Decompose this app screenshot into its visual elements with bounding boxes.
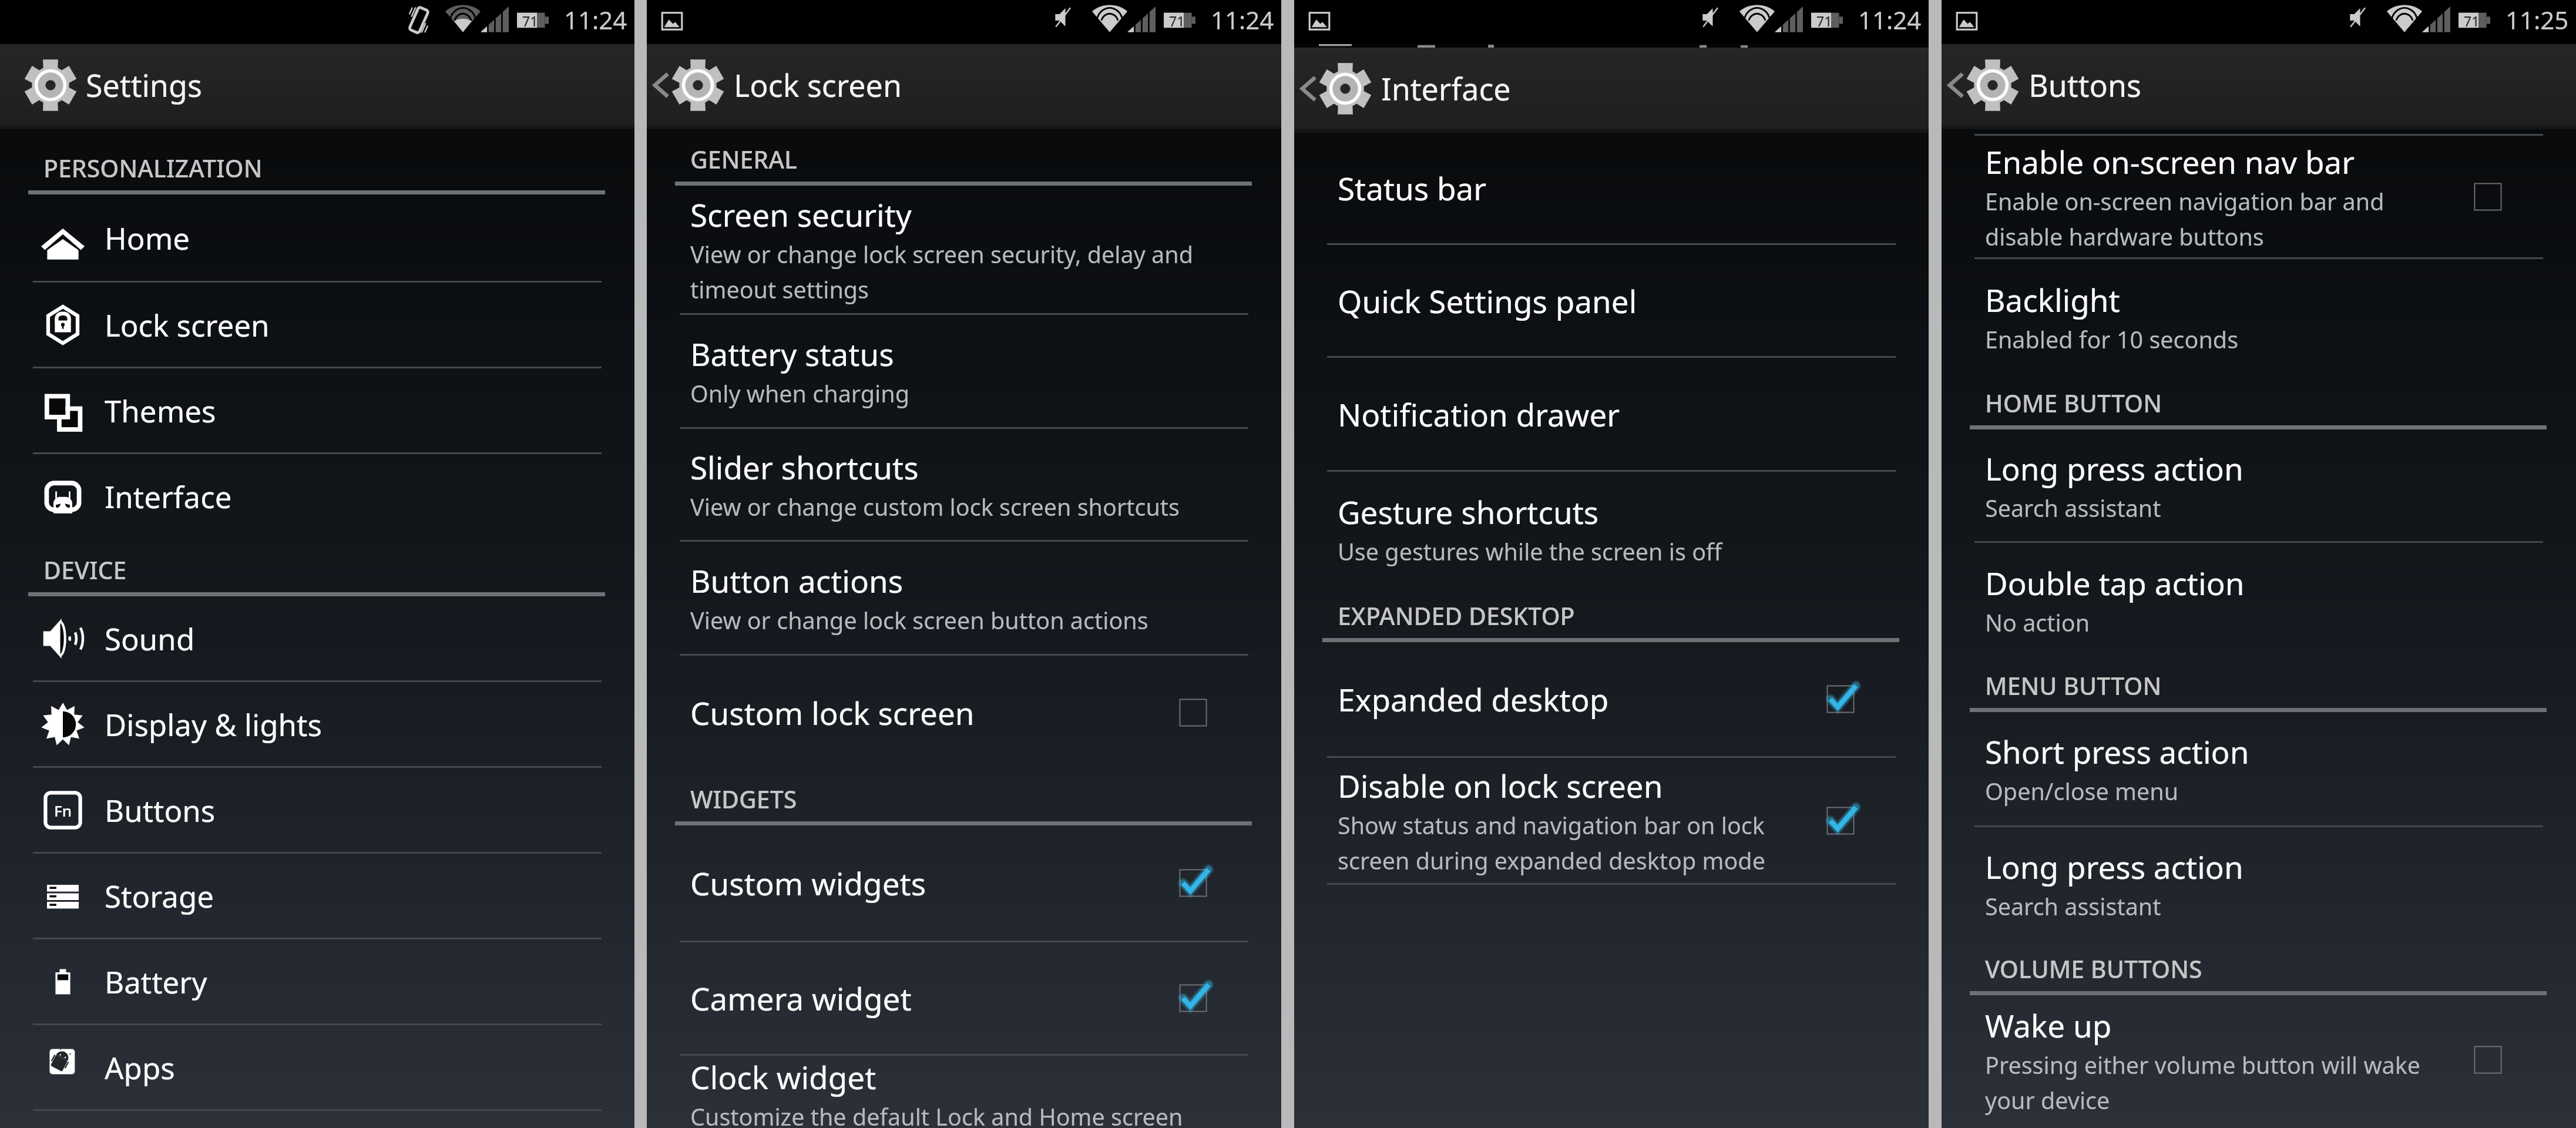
button[interactable]: Battery (0, 939, 634, 1023)
button[interactable]: Status bar (1294, 133, 1929, 243)
button[interactable]: Camera widget (647, 942, 1281, 1054)
staticText: Wake up (1985, 1004, 2112, 1046)
staticText: Interface (105, 476, 232, 516)
button[interactable]: Quick Settings panel (1294, 245, 1929, 356)
staticText: Backlight (1985, 278, 2120, 321)
staticText: PERSONALIZATION (43, 152, 263, 184)
button[interactable]: Custom widgets (647, 825, 1281, 941)
staticText: 71 (1816, 12, 1832, 30)
button[interactable]: Navigate up (647, 44, 1281, 126)
button[interactable]: Navigate up (1942, 44, 2576, 126)
button[interactable]: Long press action (1942, 827, 2576, 941)
staticText: Status bar (1338, 167, 1487, 209)
button[interactable]: Disable on lock screen (1294, 758, 1929, 883)
other: Navigate up (653, 72, 669, 99)
staticText: Battery (105, 961, 207, 1002)
button[interactable]: Long press action (1942, 429, 2576, 541)
button[interactable]: Expanded desktop (1294, 642, 1929, 756)
button[interactable]: Battery status (647, 315, 1281, 427)
button[interactable]: Fn (0, 768, 634, 852)
staticText: Show status and navigation bar on lock s… (1338, 810, 1814, 877)
staticText: Battery status (690, 333, 894, 375)
staticText: Custom lock screen (690, 691, 975, 734)
staticText: Interface (1381, 68, 1511, 109)
button[interactable]: Home (0, 194, 634, 281)
staticText: Sound (105, 618, 195, 659)
staticText: 71 (522, 12, 538, 30)
staticText: Expanded desktop (1338, 678, 1609, 720)
staticText: Apps (105, 1047, 175, 1087)
button[interactable]: Notification drawer (1294, 358, 1929, 470)
staticText: WIDGETS (690, 783, 797, 815)
staticText: Search assistant (1985, 492, 2161, 524)
staticText: Enable on-screen nav bar (1985, 140, 2355, 183)
staticText: Notification drawer (1338, 393, 1620, 435)
staticText: Fn (54, 800, 72, 821)
staticText: HOME BUTTON (1985, 387, 2162, 419)
staticText: Clock widget (690, 1056, 876, 1098)
staticText: Only when charging (690, 378, 909, 409)
button[interactable]: Enable on-screen nav bar (1942, 136, 2576, 257)
staticText: Camera widget (690, 977, 912, 1019)
staticText: Custom widgets (690, 862, 926, 904)
staticText: Pressing either volume button will wake … (1985, 1049, 2461, 1116)
staticText: Enabled for 10 seconds (1985, 324, 2239, 355)
button[interactable]: Storage (0, 854, 634, 938)
button[interactable]: Double tap action (1942, 543, 2576, 657)
staticText: View or change lock screen button action… (690, 605, 1148, 636)
staticText: Search assistant (1985, 891, 2161, 922)
button[interactable]: Settings (0, 44, 634, 126)
staticText: No action (1985, 607, 2090, 639)
staticText: Double tap action (1985, 562, 2245, 604)
staticText: DEVICE (43, 553, 127, 586)
staticText: Gesture shortcuts (1338, 491, 1599, 533)
staticText: Buttons (2028, 64, 2141, 106)
staticText: EXPANDED DESKTOP (1338, 599, 1575, 632)
button[interactable]: Short press action (1942, 712, 2576, 825)
button[interactable]: Sound (0, 596, 634, 680)
staticText: 11:24 (564, 3, 627, 36)
staticText: GENERAL (690, 143, 797, 176)
staticText: Long press action (1985, 845, 2243, 888)
staticText: Open/close menu (1985, 775, 2179, 807)
button[interactable]: Interface (0, 454, 634, 538)
button[interactable]: Apps (0, 1025, 634, 1109)
button[interactable]: Lock screen (0, 283, 634, 367)
staticText: Use gestures while the screen is off (1338, 536, 1722, 568)
staticText: 71 (2464, 12, 2480, 30)
button[interactable]: Custom lock screen (647, 656, 1281, 770)
staticText: 11:25 (2506, 3, 2569, 36)
staticText: Themes (105, 390, 216, 431)
staticText: Long press action (1985, 447, 2243, 489)
staticText: Quick Settings panel (1338, 280, 1637, 322)
button[interactable]: Screen security (647, 186, 1281, 313)
staticText: Screen security (690, 193, 912, 236)
staticText: View or change lock screen security, del… (690, 239, 1265, 305)
button[interactable]: Navigate up (1294, 48, 1929, 129)
button[interactable]: Backlight (1942, 259, 2576, 374)
staticText: Button actions (690, 559, 904, 602)
other: Navigate up (1301, 75, 1316, 102)
button[interactable]: Wake up (1942, 995, 2576, 1124)
staticText: Enable on-screen navigation bar and disa… (1985, 186, 2461, 253)
staticText: Customize the default Lock and Home scre… (690, 1101, 1183, 1128)
staticText: MENU BUTTON (1985, 669, 2162, 702)
button[interactable]: Clock widget (647, 1056, 1281, 1128)
staticText: Lock screen (105, 304, 270, 345)
staticText: Lock screen (734, 64, 902, 106)
button[interactable]: Button actions (647, 542, 1281, 654)
staticText: Storage (105, 875, 214, 916)
button[interactable]: Gesture shortcuts (1294, 472, 1929, 586)
staticText: 11:24 (1858, 3, 1922, 36)
button[interactable]: Display & lights (0, 682, 634, 766)
staticText: Slider shortcuts (690, 446, 919, 488)
button[interactable]: Themes (0, 368, 634, 452)
other: Navigate up (1948, 72, 1963, 99)
staticText: 71 (1169, 12, 1185, 30)
staticText: Buttons (105, 790, 216, 830)
button[interactable]: Slider shortcuts (647, 429, 1281, 540)
staticText: View or change custom lock screen shortc… (690, 491, 1180, 523)
staticText: 11:24 (1211, 3, 1274, 36)
staticText: Disable on lock screen (1338, 764, 1663, 807)
staticText: VOLUME BUTTONS (1985, 952, 2202, 985)
